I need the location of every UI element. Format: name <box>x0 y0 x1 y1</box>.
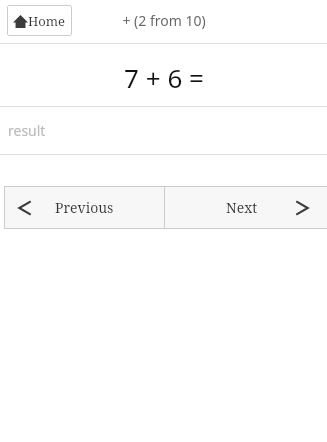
button[interactable]: Previous <box>4 186 164 229</box>
staticText: 7 + 6 = <box>124 60 204 95</box>
staticText: Previous <box>55 198 114 217</box>
button[interactable]: result <box>0 107 327 154</box>
staticText: Next <box>226 198 258 217</box>
button[interactable]: Next <box>165 186 327 229</box>
button[interactable]: Home <box>7 5 72 36</box>
staticText: result <box>8 121 46 140</box>
staticText: + (2 from 10) <box>122 11 206 30</box>
staticText: Home <box>28 12 66 30</box>
other: Next <box>291 197 313 219</box>
